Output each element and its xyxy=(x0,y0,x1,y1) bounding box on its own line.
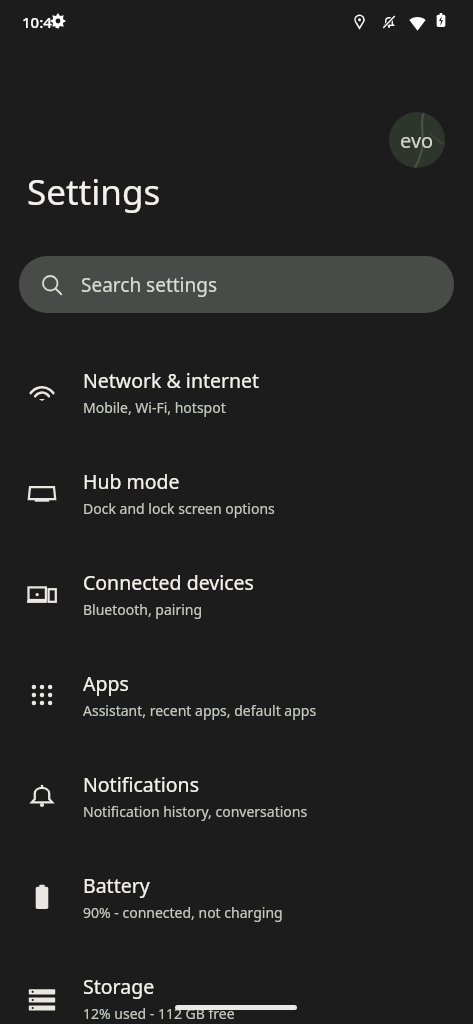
button[interactable]: Battery xyxy=(0,846,473,947)
staticText: Settings xyxy=(27,168,161,216)
staticText: Dock and lock screen options xyxy=(83,499,275,518)
staticText: 12% used - 112 GB free xyxy=(83,1004,235,1023)
staticText: Apps xyxy=(83,670,129,697)
staticText: Notification history, conversations xyxy=(83,802,308,821)
staticText: Storage xyxy=(83,973,155,1000)
button[interactable]: Connected devices xyxy=(0,543,473,644)
button[interactable]: Notifications xyxy=(0,745,473,846)
button[interactable]: Account avatar xyxy=(389,112,445,168)
staticText: Connected devices xyxy=(83,569,254,596)
button[interactable]: Network & internet xyxy=(0,341,473,442)
staticText: Assistant, recent apps, default apps xyxy=(83,701,317,720)
staticText: Mobile, Wi-Fi, hotspot xyxy=(83,398,226,417)
staticText: evo xyxy=(400,127,434,154)
staticText: Network & internet xyxy=(83,367,260,394)
staticText: Notifications xyxy=(83,771,199,798)
button[interactable]: Apps xyxy=(0,644,473,745)
staticText: Hub mode xyxy=(83,468,180,495)
button[interactable]: Search settings xyxy=(19,256,454,313)
button[interactable]: Storage xyxy=(0,947,473,1024)
staticText: Bluetooth, pairing xyxy=(83,600,203,619)
staticText: Search settings xyxy=(81,272,218,298)
staticText: Battery xyxy=(83,872,150,899)
button[interactable]: Hub mode xyxy=(0,442,473,543)
staticText: 10:41 xyxy=(22,12,61,32)
staticText: 90% - connected, not charging xyxy=(83,903,283,922)
